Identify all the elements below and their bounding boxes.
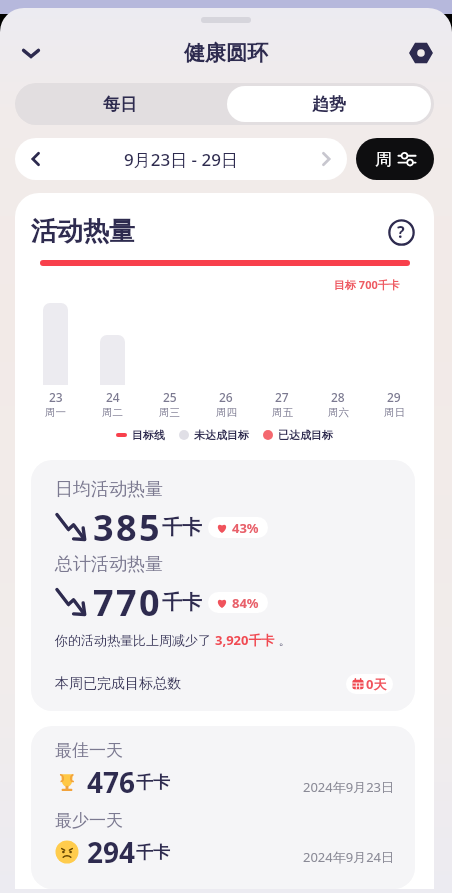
staticText: 总计活动热量	[55, 553, 163, 576]
staticText: 385	[93, 503, 162, 552]
staticText: 2024年9月24日	[303, 848, 395, 866]
button[interactable]: Settings	[402, 34, 440, 72]
staticText: 3,920千卡	[215, 631, 275, 649]
staticText: 0天	[366, 675, 387, 693]
staticText: 未达成目标	[194, 428, 249, 442]
staticText: 770	[93, 578, 162, 627]
staticText: 25	[163, 389, 177, 405]
staticText: 目标线	[132, 428, 165, 442]
staticText: 9月23日 - 29日	[124, 148, 238, 171]
staticText: ?	[397, 221, 405, 243]
staticText: 84%	[232, 594, 259, 612]
staticText: 千卡	[136, 772, 170, 793]
staticText: 27	[275, 389, 289, 405]
staticText: 千卡	[162, 590, 202, 615]
staticText: 周五	[272, 406, 293, 419]
staticText: 周	[375, 149, 392, 170]
staticText: 43%	[232, 519, 259, 537]
button[interactable]: 每日	[15, 83, 224, 125]
button[interactable]: Help	[386, 217, 416, 247]
staticText: 周四	[216, 406, 237, 419]
staticText: 千卡	[136, 842, 170, 863]
staticText: 29	[387, 389, 401, 405]
staticText: 本周已完成目标总数	[55, 675, 181, 693]
staticText: 目标 700千卡	[334, 277, 400, 292]
staticText: 趋势	[312, 94, 346, 115]
staticText: 476	[87, 763, 136, 801]
staticText: 周二	[102, 406, 123, 419]
button[interactable]: 趋势	[227, 86, 431, 122]
staticText: 你的活动热量比上周减少了	[55, 631, 215, 649]
staticText: 健康圆环	[184, 40, 268, 66]
staticText: 周六	[328, 406, 349, 419]
staticText: 23	[49, 389, 63, 405]
staticText: 千卡	[162, 515, 202, 540]
staticText: 每日	[103, 94, 137, 115]
staticText: 2024年9月23日	[303, 778, 395, 796]
staticText: 。	[275, 631, 292, 649]
staticText: 已达成目标	[278, 428, 333, 442]
staticText: 周一	[45, 406, 66, 419]
staticText: 294	[87, 833, 136, 871]
staticText: 日均活动热量	[55, 478, 163, 501]
staticText: 周日	[384, 406, 405, 419]
staticText: 26	[219, 389, 233, 405]
staticText: 周三	[159, 406, 180, 419]
staticText: 最佳一天	[55, 740, 123, 761]
staticText: 28	[331, 389, 345, 405]
staticText: 最少一天	[55, 810, 123, 831]
button[interactable]: 周	[356, 138, 434, 180]
button[interactable]: Previous week	[15, 138, 57, 180]
button[interactable]: Collapse	[12, 34, 50, 72]
staticText: 24	[106, 389, 120, 405]
button[interactable]: Next week	[305, 138, 347, 180]
staticText: 活动热量	[31, 215, 135, 248]
